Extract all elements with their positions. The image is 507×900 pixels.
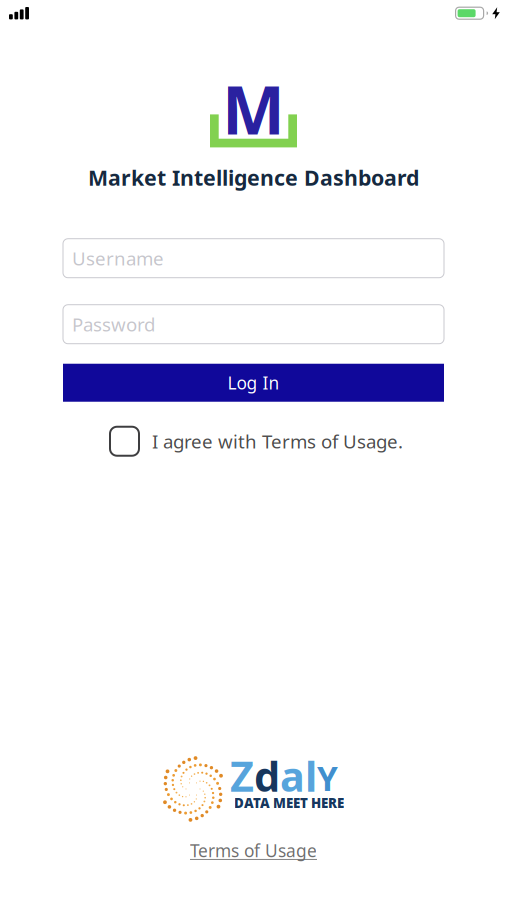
button[interactable]: Password text field [63,305,444,344]
staticText: Y [317,756,338,800]
staticText: I agree with Terms of Usage. [152,429,403,454]
button[interactable]: Terms of Usage [190,839,317,862]
button[interactable]: Username text field [63,239,444,278]
button[interactable]: I agree with Terms of Usage [110,427,139,456]
staticText: a [280,748,305,803]
staticText: Z [230,748,254,803]
staticText: Username [72,246,164,271]
staticText: l [305,748,317,803]
staticText: Password [72,312,155,337]
button[interactable]: Log In [63,364,444,402]
staticText: DATA MEET HERE [234,794,344,812]
staticText: M [222,64,285,153]
staticText: Terms of Usage [190,839,317,862]
staticText: Log In [227,371,279,394]
staticText: d [254,748,280,803]
staticText: Market Intelligence Dashboard [88,163,419,192]
